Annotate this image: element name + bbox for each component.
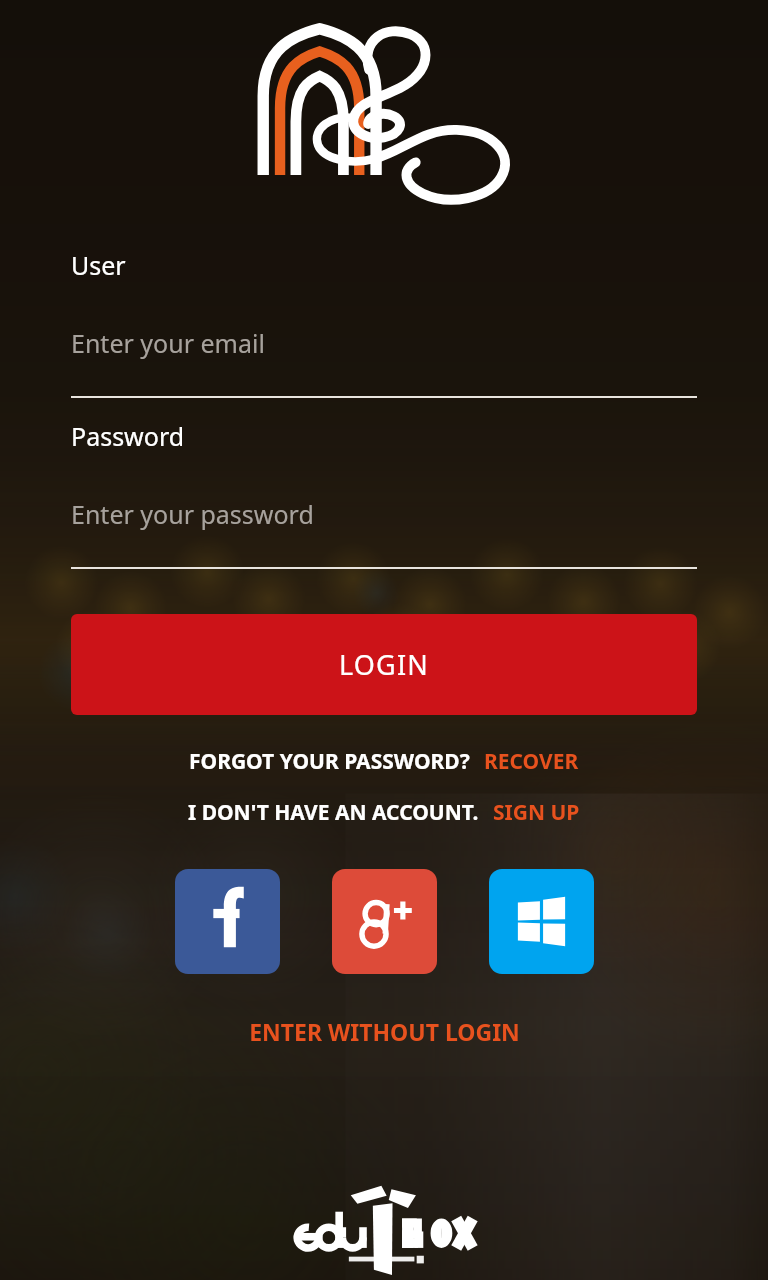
button[interactable]: SIGN UP [479, 798, 580, 827]
staticText: I DON'T HAVE AN ACCOUNT. [188, 798, 479, 827]
button[interactable]: LOGIN [71, 614, 697, 715]
button[interactable]: RECOVER [470, 747, 579, 776]
staticText: Enter your email [71, 326, 265, 360]
staticText: User [71, 248, 126, 282]
staticText: RECOVER [484, 747, 579, 776]
button[interactable]: Enter your email [71, 326, 697, 360]
staticText: LOGIN [339, 646, 430, 683]
button[interactable]: Sign in with Google Plus [332, 869, 437, 974]
button[interactable]: ENTER WITHOUT LOGIN [239, 1010, 530, 1053]
staticText: SIGN UP [493, 798, 580, 827]
staticText: ENTER WITHOUT LOGIN [249, 1016, 520, 1047]
staticText: Enter your password [71, 497, 314, 531]
button[interactable]: Sign in with Facebook [175, 869, 280, 974]
staticText: FORGOT YOUR PASSWORD? [189, 747, 470, 776]
staticText: Password [71, 419, 185, 453]
button[interactable]: Enter your password [71, 497, 697, 531]
button[interactable]: Sign in with Microsoft [489, 869, 594, 974]
